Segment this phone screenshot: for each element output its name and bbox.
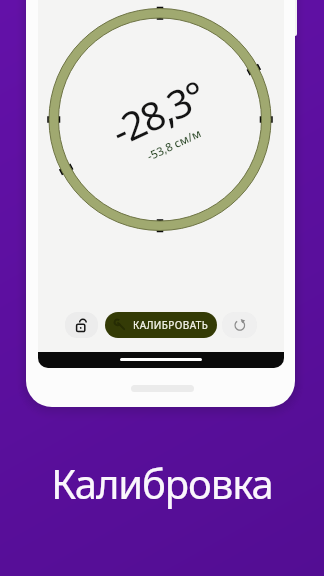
button[interactable]: Lock orientation <box>65 312 98 338</box>
staticText: -28,3° <box>102 67 213 157</box>
button[interactable]: КАЛИБРОВАТЬ <box>105 312 217 338</box>
button[interactable]: Reset <box>222 312 257 338</box>
staticText: КАЛИБРОВАТЬ <box>133 318 209 332</box>
staticText: Калибровка <box>51 456 273 510</box>
staticText: -53,8 см/м <box>144 125 204 164</box>
